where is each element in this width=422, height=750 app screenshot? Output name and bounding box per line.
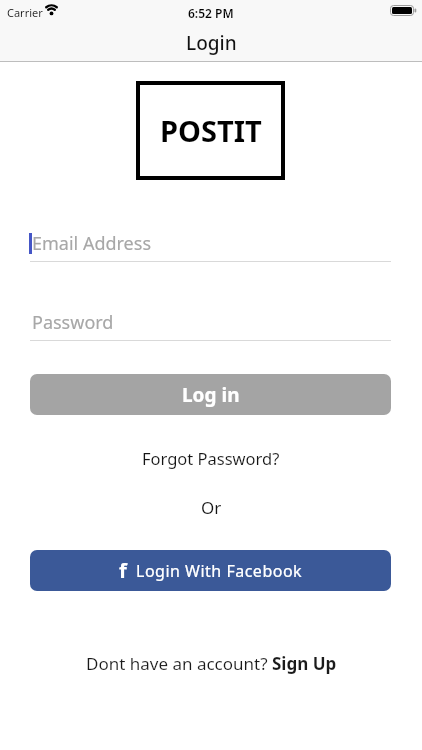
button[interactable]: Log in [30,374,391,415]
staticText: f [119,557,127,584]
staticText: Or [201,496,222,519]
button[interactable]: Email Address [32,231,152,256]
staticText: 6:52 PM [188,5,234,21]
staticText: Log in [182,382,240,408]
button[interactable]: Dont have an account? Sign Up [86,652,337,675]
button[interactable]: Password [32,310,114,335]
staticText: Login With Facebook [136,560,303,582]
button[interactable]: f [30,550,391,591]
staticText: Dont have an account? Sign Up [86,652,337,675]
staticText: Carrier [7,5,43,20]
staticText: POSTIT [160,111,262,150]
staticText: Login [186,30,237,56]
button[interactable]: Forgot Password? [142,447,280,469]
